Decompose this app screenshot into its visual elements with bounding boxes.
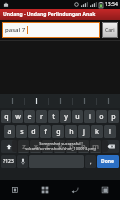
staticText: j	[83, 127, 85, 137]
button[interactable]: t	[48, 110, 59, 123]
staticText: o	[99, 112, 104, 122]
button[interactable]: y	[60, 110, 71, 123]
button[interactable]: n	[78, 140, 89, 153]
button[interactable]	[49, 94, 72, 108]
button[interactable]: Cari	[102, 22, 118, 38]
button[interactable]: s	[16, 125, 27, 138]
button[interactable]: Apps	[30, 180, 60, 200]
button[interactable]: Shift	[1, 140, 17, 153]
button[interactable]: d	[28, 125, 39, 138]
button[interactable]: Undang - Undang Perlindungan Anak	[0, 9, 120, 20]
staticText: f	[44, 127, 47, 137]
button[interactable]: w	[12, 110, 23, 123]
staticText: ?123	[3, 158, 14, 165]
button[interactable]	[97, 94, 120, 108]
button[interactable]: x	[30, 140, 41, 153]
button[interactable]: g	[52, 125, 64, 138]
button[interactable]: u	[72, 110, 83, 123]
staticText: Undang - Undang Perlindungan Anak	[3, 11, 96, 18]
button[interactable]: c	[42, 140, 53, 153]
staticText: Screenshot successful !	[39, 141, 83, 146]
staticText: Cari	[105, 27, 115, 34]
staticText: Done	[101, 158, 115, 165]
staticText: r	[40, 112, 43, 122]
button[interactable]: ?123	[1, 155, 16, 168]
button[interactable]: l	[104, 125, 116, 138]
staticText: pasal 7	[5, 26, 26, 34]
staticText: t	[52, 112, 55, 122]
button[interactable]: o	[96, 110, 107, 123]
button[interactable]	[25, 94, 48, 108]
button[interactable]: v	[54, 140, 65, 153]
button[interactable]: a	[4, 125, 15, 138]
staticText: ,	[90, 158, 92, 166]
button[interactable]: Done	[97, 155, 119, 168]
staticText: k	[95, 127, 99, 137]
button[interactable]: z	[18, 140, 29, 153]
staticText: q	[4, 112, 9, 122]
button[interactable]: p	[108, 110, 119, 123]
staticText: e	[27, 112, 32, 122]
staticText: sdcard/screenshots/shot_100013.png	[25, 146, 96, 151]
button[interactable]	[73, 94, 96, 108]
staticText: a	[7, 127, 12, 137]
button[interactable]: r	[36, 110, 47, 123]
staticText: i	[89, 112, 91, 122]
staticText: x	[34, 142, 38, 152]
staticText: n	[81, 142, 86, 152]
button[interactable]	[0, 94, 24, 108]
button[interactable]: b	[66, 140, 77, 153]
button[interactable]: m	[90, 140, 101, 153]
staticText: s	[20, 127, 24, 137]
button[interactable]: Back	[60, 180, 90, 200]
button[interactable]: i	[84, 110, 95, 123]
button[interactable]: e	[24, 110, 35, 123]
staticText: u	[75, 112, 80, 122]
staticText: h	[69, 127, 74, 137]
button[interactable]: Voice input	[17, 155, 28, 168]
staticText: l	[109, 127, 111, 137]
button[interactable]: Recents	[90, 180, 120, 200]
staticText: v	[58, 142, 62, 152]
button[interactable]: h	[65, 125, 77, 138]
staticText: y	[64, 112, 68, 122]
button[interactable]: q	[1, 110, 11, 123]
staticText: c	[46, 142, 50, 152]
staticText: z	[22, 142, 26, 152]
staticText: m	[92, 142, 99, 152]
button[interactable]: pasal 7	[2, 22, 100, 38]
button[interactable]: j	[78, 125, 90, 138]
staticText: 13:54	[105, 1, 118, 8]
button[interactable]: ,	[85, 155, 96, 168]
button[interactable]: k	[91, 125, 103, 138]
staticText: d	[31, 127, 36, 137]
button[interactable]: Menu	[0, 180, 30, 200]
staticText: p	[111, 112, 116, 122]
staticText: b	[69, 142, 74, 152]
button[interactable]: f	[40, 125, 51, 138]
staticText: w	[15, 112, 21, 122]
staticText: g	[56, 127, 61, 137]
button[interactable]: Backspace	[102, 140, 119, 153]
